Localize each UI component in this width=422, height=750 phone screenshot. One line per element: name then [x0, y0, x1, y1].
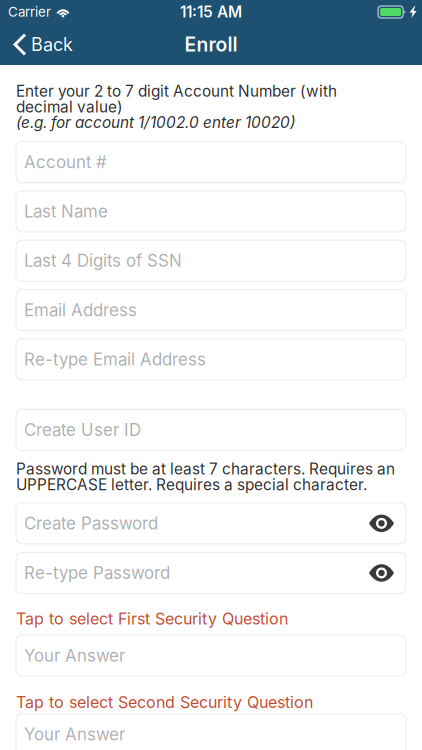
button[interactable]: Create User ID — [16, 409, 406, 450]
button[interactable]: Last Name — [16, 191, 406, 232]
staticText: Email Address — [24, 300, 137, 320]
staticText: Last Name — [24, 201, 108, 222]
button[interactable]: Back — [0, 24, 83, 64]
staticText: Account # — [24, 152, 107, 172]
staticText: Last 4 Digits of SSN — [24, 251, 182, 271]
staticText: 11:15 AM — [180, 3, 242, 21]
staticText: Tap to select Second Security Question — [16, 692, 313, 712]
staticText: (e.g. for account 1/1002.0 enter 10020) — [16, 113, 296, 132]
button[interactable]: Your Answer — [16, 714, 406, 750]
staticText: Re-type Email Address — [24, 349, 206, 369]
staticText: Create Password — [24, 513, 158, 533]
button[interactable]: Create Password — [16, 503, 406, 544]
staticText: Your Answer — [24, 724, 125, 744]
staticText: Carrier — [8, 4, 51, 20]
button[interactable]: Re-type Password — [16, 552, 406, 593]
button[interactable]: Last 4 Digits of SSN — [16, 240, 406, 281]
staticText: Enter your 2 to 7 digit Account Number (… — [16, 82, 337, 101]
staticText: decimal value) — [16, 98, 123, 116]
staticText: Your Answer — [24, 645, 125, 666]
button[interactable]: Account # — [16, 142, 406, 183]
button[interactable]: Email Address — [16, 290, 406, 331]
button[interactable]: Tap to select First Security Question — [16, 609, 406, 628]
staticText: Tap to select First Security Question — [16, 609, 288, 628]
staticText: UPPERCASE letter. Requires a special cha… — [16, 475, 367, 494]
staticText: Back — [31, 34, 73, 55]
button[interactable]: Your Answer — [16, 635, 406, 676]
staticText: Re-type Password — [24, 563, 170, 583]
staticText: Password must be at least 7 characters. … — [16, 460, 395, 478]
button[interactable]: Re-type Email Address — [16, 339, 406, 380]
staticText: Enroll — [184, 33, 237, 56]
staticText: Create User ID — [24, 420, 141, 440]
button[interactable]: Tap to select Second Security Question — [16, 693, 406, 712]
